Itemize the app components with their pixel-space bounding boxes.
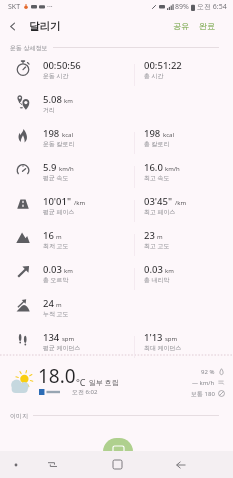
button[interactable]: Home [97,451,137,478]
staticText: SKT [8,2,21,12]
staticText: 운동 칼로리 [43,140,75,148]
button[interactable]: 0.03 [134,262,233,296]
button[interactable]: Keyboard indicator [4,451,28,478]
staticText: 23 [144,229,155,242]
staticText: 평균 케이던스 [43,344,81,352]
button[interactable]: Back [0,14,24,38]
staticText: 누적 고도 [43,310,69,318]
staticText: 198 [144,127,161,140]
staticText: — km/h [192,379,215,387]
staticText: 총 오르막 [43,276,69,284]
staticText: km/h [59,165,74,173]
button[interactable]: 공유 [168,17,193,35]
staticText: 평균 페이스 [43,208,75,216]
staticText: 완료 [199,21,215,31]
staticText: 1'13 [144,331,163,344]
staticText: km [165,267,174,275]
staticText: 운동 시간 [43,72,69,80]
staticText: spm [165,335,178,343]
button[interactable]: 23 [134,228,233,262]
button[interactable]: 완료 [193,17,233,35]
staticText: 03'45" [144,195,173,208]
button[interactable]: Back [161,451,201,478]
staticText: 5.9 [43,161,57,174]
button[interactable]: 198 [134,126,233,160]
button[interactable]: 0.03 [0,262,134,296]
staticText: 일부 흐림 [89,378,119,388]
staticText: 최저 고도 [43,242,69,250]
button[interactable]: 5.9 [0,160,134,194]
staticText: 5.08 [43,93,62,106]
button[interactable]: 10'01" [0,194,134,228]
staticText: spm [62,335,75,343]
staticText: 달리기 [29,20,61,33]
staticText: 거리 [43,106,55,114]
staticText: 이미지 [10,412,28,420]
staticText: 오전 6:02 [72,388,98,396]
staticText: 0.03 [144,263,163,276]
staticText: 오전 6:54 [197,2,227,12]
staticText: 16 [43,229,54,242]
staticText: kcal [62,131,73,139]
button[interactable]: 24 [0,296,134,330]
staticText: 총 내리막 [144,276,170,284]
staticText: m [157,233,163,241]
staticText: 운동 상세정보 [10,44,48,52]
staticText: 최대 케이던스 [144,344,182,352]
staticText: 24 [43,297,54,310]
staticText: 최고 고도 [144,242,170,250]
button[interactable]: 00:50:56 [0,58,134,92]
button[interactable]: Start workout [103,438,133,465]
button[interactable]: 5.08 [0,92,134,126]
staticText: km [64,267,73,275]
button[interactable]: 134 [0,330,134,364]
staticText: /km [175,199,187,207]
staticText: km/h [165,165,180,173]
staticText: ··· [47,2,53,12]
staticText: 00:51:22 [144,59,182,72]
staticText: 89% [175,2,189,12]
staticText: 공유 [173,21,189,31]
staticText: 0.03 [43,263,62,276]
button[interactable]: 1'13 [134,330,233,364]
button[interactable]: 16 [0,228,134,262]
button[interactable]: 03'45" [134,194,233,228]
staticText: km [64,97,73,105]
staticText: 최고 페이스 [144,208,176,216]
staticText: °C [76,376,86,388]
staticText: 92 % [201,368,215,376]
button[interactable]: 00:51:22 [134,58,233,92]
staticText: 198 [43,127,60,140]
staticText: m [56,233,62,241]
staticText: kcal [163,131,174,139]
button[interactable]: 16.0 [134,160,233,194]
staticText: 보통 180 [191,390,215,398]
staticText: 10'01" [43,195,72,208]
staticText: 18.0 [38,363,76,389]
staticText: 00:50:56 [43,59,81,72]
staticText: 134 [43,331,60,344]
staticText: m [56,301,62,309]
staticText: /km [74,199,86,207]
staticText: 총 시간 [144,72,164,80]
button[interactable]: 198 [0,126,134,160]
staticText: 최고 속도 [144,174,170,182]
staticText: 총 칼로리 [144,140,170,148]
button[interactable]: Recents [32,451,72,478]
staticText: 평균 속도 [43,174,69,182]
staticText: 16.0 [144,161,163,174]
